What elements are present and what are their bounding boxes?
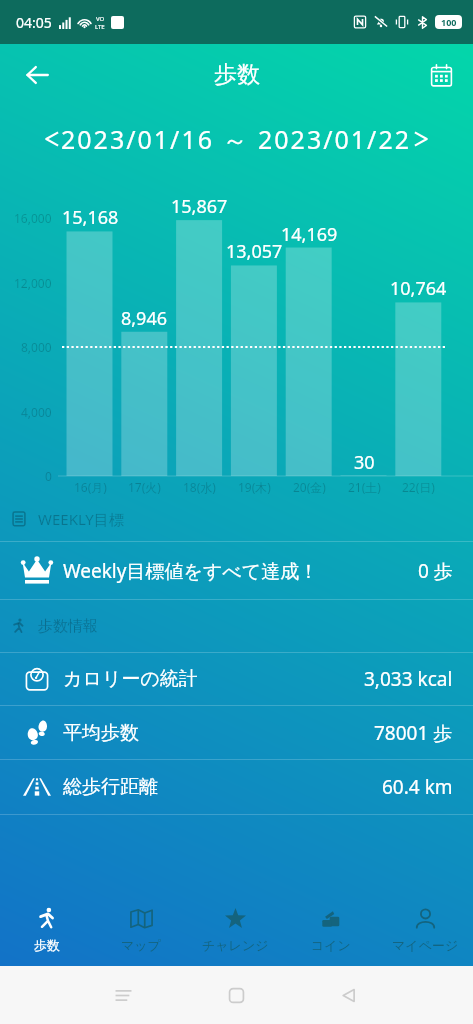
staticText: 歩数情報: [38, 617, 98, 636]
staticText: 15,867: [171, 194, 228, 219]
button[interactable]: カロリーの統計: [0, 653, 473, 705]
staticText: 12,000: [14, 275, 52, 291]
staticText: 0: [45, 468, 52, 484]
staticText: 歩数: [34, 937, 60, 953]
staticText: 22(日): [402, 479, 435, 495]
button[interactable]: 総歩行距離: [0, 760, 473, 814]
staticText: Weekly目標値をすべて達成！: [63, 558, 319, 584]
staticText: VO: [96, 15, 105, 23]
staticText: 30: [354, 450, 375, 475]
staticText: 16,000: [14, 210, 52, 226]
staticText: 18(水): [183, 479, 216, 495]
staticText: 19(木): [238, 479, 271, 495]
staticText: 2023/01/16 ～ 2023/01/22: [61, 122, 412, 156]
staticText: 4,000: [21, 404, 52, 420]
staticText: 総歩行距離: [63, 775, 158, 799]
button[interactable]: マイページ: [378, 890, 473, 966]
button[interactable]: Back: [15, 53, 59, 97]
staticText: LTE: [95, 23, 105, 31]
staticText: 17(火): [128, 479, 161, 495]
staticText: 歩数: [214, 60, 260, 89]
staticText: 平均歩数: [63, 721, 139, 745]
button[interactable]: 平均歩数: [0, 706, 473, 759]
staticText: チャレンジ: [202, 937, 269, 953]
button[interactable]: マップ: [94, 890, 188, 966]
staticText: 04:05: [16, 13, 52, 32]
button[interactable]: 歩数: [0, 890, 94, 966]
staticText: 21(土): [348, 479, 381, 495]
staticText: 0 歩: [418, 558, 453, 584]
staticText: WEEKLY目標: [38, 509, 124, 529]
button[interactable]: Weekly目標値をすべて達成！: [0, 542, 473, 599]
button[interactable]: Next week: [412, 130, 430, 148]
staticText: 100: [441, 16, 457, 28]
staticText: 14,169: [281, 222, 338, 247]
staticText: 16(月): [74, 479, 107, 495]
button[interactable]: Previous week: [43, 130, 61, 148]
staticText: コイン: [311, 937, 351, 953]
staticText: 15,168: [62, 205, 119, 230]
staticText: 8,946: [121, 306, 168, 331]
button[interactable]: チャレンジ: [188, 890, 283, 966]
staticText: マップ: [121, 937, 161, 953]
staticText: マイページ: [392, 937, 459, 953]
button[interactable]: コイン: [283, 890, 378, 966]
staticText: 3,033 kcal: [364, 666, 453, 692]
staticText: 78001 歩: [374, 720, 453, 746]
staticText: 8,000: [21, 339, 52, 355]
button[interactable]: Calendar: [419, 53, 463, 97]
staticText: カロリーの統計: [63, 667, 198, 691]
staticText: 10,764: [390, 276, 447, 301]
staticText: 60.4 km: [382, 774, 453, 800]
staticText: 13,057: [226, 239, 283, 264]
staticText: 20(金): [293, 479, 326, 495]
